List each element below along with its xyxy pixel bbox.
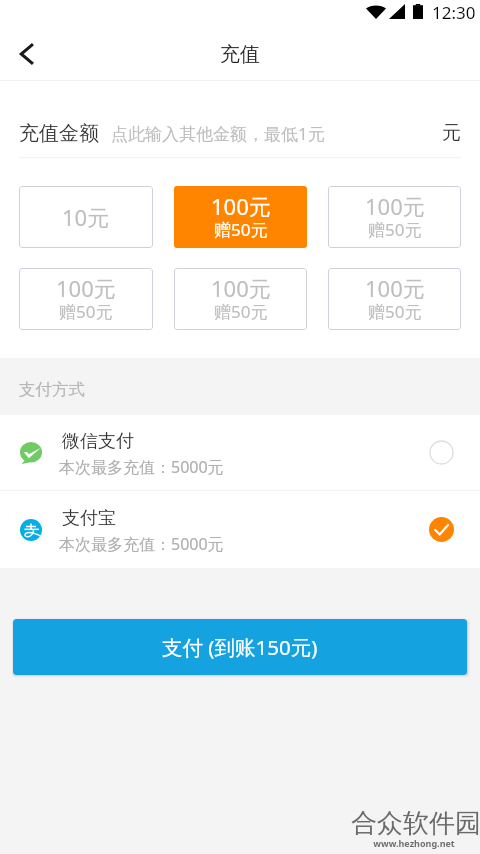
- staticText: 赠50元: [214, 300, 268, 323]
- button[interactable]: 支付宝: [0, 491, 480, 568]
- button[interactable]: 10元: [19, 186, 153, 248]
- staticText: 微信支付: [62, 430, 134, 453]
- staticText: 充值金额: [19, 121, 99, 146]
- staticText: 赠50元: [368, 218, 422, 241]
- button[interactable]: 100元: [19, 268, 153, 330]
- staticText: 100元: [211, 191, 271, 221]
- button[interactable]: 100元: [328, 268, 461, 330]
- button[interactable]: 返回: [0, 28, 56, 80]
- staticText: 100元: [365, 273, 425, 303]
- staticText: 支付方式: [19, 379, 85, 400]
- staticText: 本次最多充值：5000元: [59, 533, 224, 555]
- button[interactable]: 100元: [328, 186, 461, 248]
- staticText: 充值: [220, 42, 260, 67]
- staticText: 10元: [62, 202, 110, 232]
- staticText: 本次最多充值：5000元: [59, 456, 224, 478]
- staticText: 支付宝: [62, 507, 116, 530]
- staticText: www.hezhong.net: [373, 837, 455, 849]
- staticText: 点此输入其他金额，最低1元: [111, 122, 325, 145]
- button[interactable]: 100元: [174, 268, 307, 330]
- button[interactable]: 100元: [174, 186, 307, 248]
- staticText: 12:30: [432, 1, 476, 24]
- staticText: 赠50元: [59, 300, 113, 323]
- staticText: 100元: [211, 273, 271, 303]
- staticText: 100元: [365, 191, 425, 221]
- staticText: 元: [442, 121, 461, 145]
- button[interactable]: 支付 (到账150元): [13, 619, 467, 675]
- staticText: 100元: [56, 273, 116, 303]
- staticText: 赠50元: [214, 218, 268, 241]
- staticText: 合众软件园: [351, 807, 480, 840]
- staticText: 赠50元: [368, 300, 422, 323]
- staticText: 支付 (到账150元): [162, 633, 318, 661]
- button[interactable]: 微信支付: [0, 415, 480, 490]
